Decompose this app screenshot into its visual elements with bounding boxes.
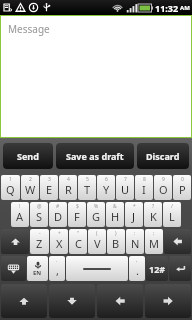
button[interactable]: ( xyxy=(88,229,106,254)
staticText: Y xyxy=(103,182,110,197)
button[interactable]: 2 xyxy=(21,175,39,200)
button[interactable]: Up xyxy=(1,284,47,318)
staticText: H xyxy=(111,209,120,224)
staticText: 2 xyxy=(29,176,32,183)
staticText: O xyxy=(159,182,168,197)
button[interactable]: 12# xyxy=(146,256,168,281)
staticText: 6 xyxy=(105,176,108,183)
staticText: 4 xyxy=(67,176,70,183)
button[interactable]: 4 xyxy=(59,175,77,200)
staticText: L xyxy=(169,209,175,224)
button[interactable]: Save as draft xyxy=(56,143,134,169)
button[interactable]: ) xyxy=(107,229,125,254)
staticText: 9 xyxy=(162,176,165,183)
staticText: ) xyxy=(115,230,117,237)
staticText: # xyxy=(56,203,60,210)
staticText: $ xyxy=(76,203,79,210)
button[interactable]: Down xyxy=(49,284,95,318)
button[interactable]: - xyxy=(30,229,49,254)
button[interactable]: Voice input xyxy=(27,256,48,281)
button[interactable]: Right xyxy=(145,284,191,318)
staticText: Message xyxy=(8,22,50,36)
staticText: : xyxy=(134,230,136,237)
staticText: S xyxy=(36,209,43,224)
button[interactable]: Message xyxy=(1,16,191,137)
button[interactable]: 3 xyxy=(40,175,58,200)
staticText: * xyxy=(133,203,136,210)
button[interactable]: Enter xyxy=(169,256,191,281)
button[interactable]: " xyxy=(69,229,87,254)
button[interactable]: Space xyxy=(66,256,128,281)
button[interactable]: . xyxy=(49,256,65,281)
button[interactable]: + xyxy=(50,229,68,254)
staticText: " xyxy=(77,230,80,237)
staticText: EN xyxy=(33,269,42,277)
button[interactable]: # xyxy=(49,202,67,227)
staticText: + xyxy=(58,230,61,237)
staticText: P xyxy=(179,182,186,197)
staticText: X xyxy=(56,236,63,251)
staticText: & xyxy=(113,203,117,210)
staticText: J xyxy=(132,209,136,224)
staticText: B xyxy=(112,236,120,251)
staticText: M xyxy=(149,236,159,251)
staticText: , xyxy=(136,257,138,264)
staticText: W xyxy=(25,182,36,197)
button[interactable]: 0 xyxy=(173,175,191,200)
button[interactable]: Backspace xyxy=(164,229,191,254)
staticText: C xyxy=(75,236,82,251)
staticText: 11:32 xyxy=(155,2,179,14)
button[interactable]: Send xyxy=(3,143,53,169)
staticText: 0 xyxy=(181,176,184,183)
staticText: AM xyxy=(180,4,190,12)
button[interactable]: 8 xyxy=(135,175,153,200)
button[interactable]: 9 xyxy=(154,175,172,200)
staticText: 3 xyxy=(48,176,51,183)
staticText: F xyxy=(74,209,80,224)
button[interactable]: ! xyxy=(11,202,29,227)
button[interactable]: Discard xyxy=(137,143,189,169)
button[interactable]: & xyxy=(106,202,124,227)
staticText: A xyxy=(16,209,24,224)
button[interactable]: Shift xyxy=(1,229,29,254)
staticText: . xyxy=(56,257,58,264)
staticText: G xyxy=(92,209,101,224)
staticText: ? xyxy=(152,203,155,210)
staticText: Z xyxy=(36,236,43,251)
button[interactable]: $ xyxy=(68,202,86,227)
staticText: @ xyxy=(37,203,42,210)
staticText: ( xyxy=(96,230,98,237)
button[interactable]: @ xyxy=(30,202,48,227)
staticText: / xyxy=(171,203,173,210)
staticText: I xyxy=(142,182,146,197)
staticText: ; xyxy=(153,230,155,237)
button[interactable]: 1 xyxy=(1,175,20,200)
staticText: 12# xyxy=(149,263,166,275)
button[interactable]: / xyxy=(163,202,181,227)
button[interactable]: ; xyxy=(145,229,163,254)
button[interactable]: % xyxy=(87,202,105,227)
button[interactable]: Left xyxy=(97,284,143,318)
button[interactable]: Keyboard settings xyxy=(1,256,26,281)
staticText: 7 xyxy=(124,176,127,183)
staticText: Save as draft xyxy=(66,150,124,162)
staticText: V xyxy=(94,236,101,251)
button[interactable]: 5 xyxy=(78,175,96,200)
staticText: D xyxy=(54,209,63,224)
staticText: E xyxy=(46,182,53,197)
button[interactable]: 6 xyxy=(97,175,115,200)
staticText: , xyxy=(56,263,59,278)
button[interactable]: , xyxy=(129,256,145,281)
button[interactable]: : xyxy=(126,229,144,254)
staticText: ! xyxy=(19,203,21,210)
staticText: Q xyxy=(6,182,15,197)
staticText: - xyxy=(39,230,41,237)
button[interactable]: ? xyxy=(144,202,162,227)
staticText: Send xyxy=(17,150,39,162)
staticText: Discard xyxy=(146,150,180,162)
button[interactable]: 7 xyxy=(116,175,134,200)
button[interactable]: * xyxy=(125,202,143,227)
staticText: 5 xyxy=(86,176,89,183)
staticText: 1 xyxy=(9,176,12,183)
staticText: K xyxy=(150,209,157,224)
